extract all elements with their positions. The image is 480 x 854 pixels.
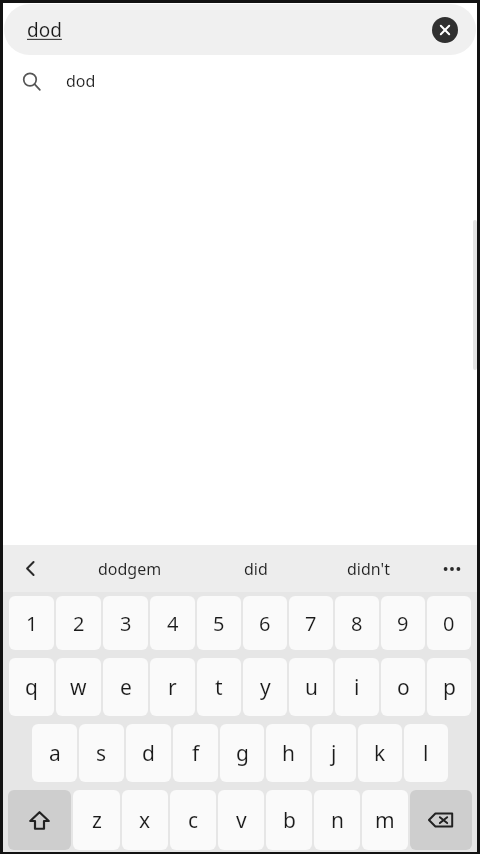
staticText: b (283, 806, 296, 835)
button[interactable]: b (266, 790, 312, 850)
button[interactable]: n (314, 790, 360, 850)
button[interactable]: m (362, 790, 408, 850)
staticText: 4 (167, 610, 179, 637)
button[interactable]: Backspace (410, 790, 472, 850)
staticText: c (188, 806, 199, 835)
staticText: t (215, 673, 223, 702)
button[interactable]: i (335, 658, 379, 716)
staticText: dod (66, 70, 96, 92)
button[interactable]: More options (424, 545, 480, 592)
button[interactable]: f (173, 724, 218, 782)
staticText: didn't (347, 558, 390, 580)
staticText: m (375, 806, 395, 835)
button[interactable]: dod (4, 4, 476, 55)
staticText: y (260, 673, 271, 702)
staticText: o (397, 673, 410, 702)
button[interactable]: p (427, 658, 471, 716)
button[interactable]: d (126, 724, 171, 782)
button[interactable]: 0 (427, 596, 471, 650)
staticText: e (120, 673, 132, 702)
button[interactable]: x (122, 790, 168, 850)
staticText: w (70, 673, 87, 702)
button[interactable]: j (312, 724, 356, 782)
staticText: g (236, 739, 249, 768)
button[interactable]: 3 (103, 596, 148, 650)
button[interactable]: c (170, 790, 216, 850)
staticText: f (192, 739, 200, 768)
button[interactable]: Clear search (432, 17, 458, 43)
button[interactable]: dodgem (60, 545, 200, 592)
staticText: u (305, 673, 318, 702)
button[interactable]: w (56, 658, 101, 716)
staticText: i (354, 673, 360, 702)
staticText: 0 (443, 610, 455, 637)
button[interactable]: e (103, 658, 148, 716)
staticText: z (92, 806, 102, 835)
staticText: l (423, 739, 429, 768)
staticText: 5 (213, 610, 225, 637)
button[interactable]: u (289, 658, 333, 716)
staticText: 9 (397, 610, 409, 637)
button[interactable]: did (200, 545, 312, 592)
button[interactable]: o (381, 658, 425, 716)
button[interactable]: v (218, 790, 264, 850)
staticText: k (374, 739, 386, 768)
staticText: r (168, 673, 177, 702)
button[interactable]: 8 (335, 596, 379, 650)
staticText: n (331, 806, 344, 835)
staticText: x (139, 806, 151, 835)
button[interactable]: h (266, 724, 310, 782)
button[interactable]: didn't (312, 545, 424, 592)
button[interactable]: 6 (243, 596, 287, 650)
button[interactable]: dod (0, 57, 480, 105)
button[interactable]: 2 (56, 596, 101, 650)
staticText: 7 (305, 610, 317, 637)
button[interactable]: z (73, 790, 120, 850)
button[interactable]: r (150, 658, 195, 716)
button[interactable]: a (32, 724, 77, 782)
button[interactable]: 5 (197, 596, 241, 650)
staticText: h (282, 739, 295, 768)
button[interactable]: k (358, 724, 402, 782)
button[interactable]: Shift (8, 790, 71, 850)
staticText: dodgem (98, 558, 162, 580)
staticText: v (236, 806, 247, 835)
staticText: 2 (73, 610, 85, 637)
button[interactable]: 7 (289, 596, 333, 650)
staticText: 8 (351, 610, 363, 637)
staticText: dod (27, 17, 62, 43)
button[interactable]: 9 (381, 596, 425, 650)
staticText: 1 (26, 610, 38, 637)
button[interactable]: Previous (0, 545, 60, 592)
staticText: p (443, 673, 456, 702)
button[interactable]: g (220, 724, 264, 782)
staticText: d (142, 739, 155, 768)
button[interactable]: y (243, 658, 287, 716)
staticText: s (96, 739, 107, 768)
staticText: 3 (120, 610, 132, 637)
staticText: did (244, 558, 268, 580)
button[interactable]: t (197, 658, 241, 716)
staticText: j (331, 739, 337, 768)
staticText: q (25, 673, 38, 702)
staticText: a (49, 739, 61, 768)
button[interactable]: 4 (150, 596, 195, 650)
staticText: 6 (259, 610, 271, 637)
button[interactable]: q (9, 658, 54, 716)
button[interactable]: 1 (9, 596, 54, 650)
button[interactable]: l (404, 724, 448, 782)
button[interactable]: s (79, 724, 124, 782)
